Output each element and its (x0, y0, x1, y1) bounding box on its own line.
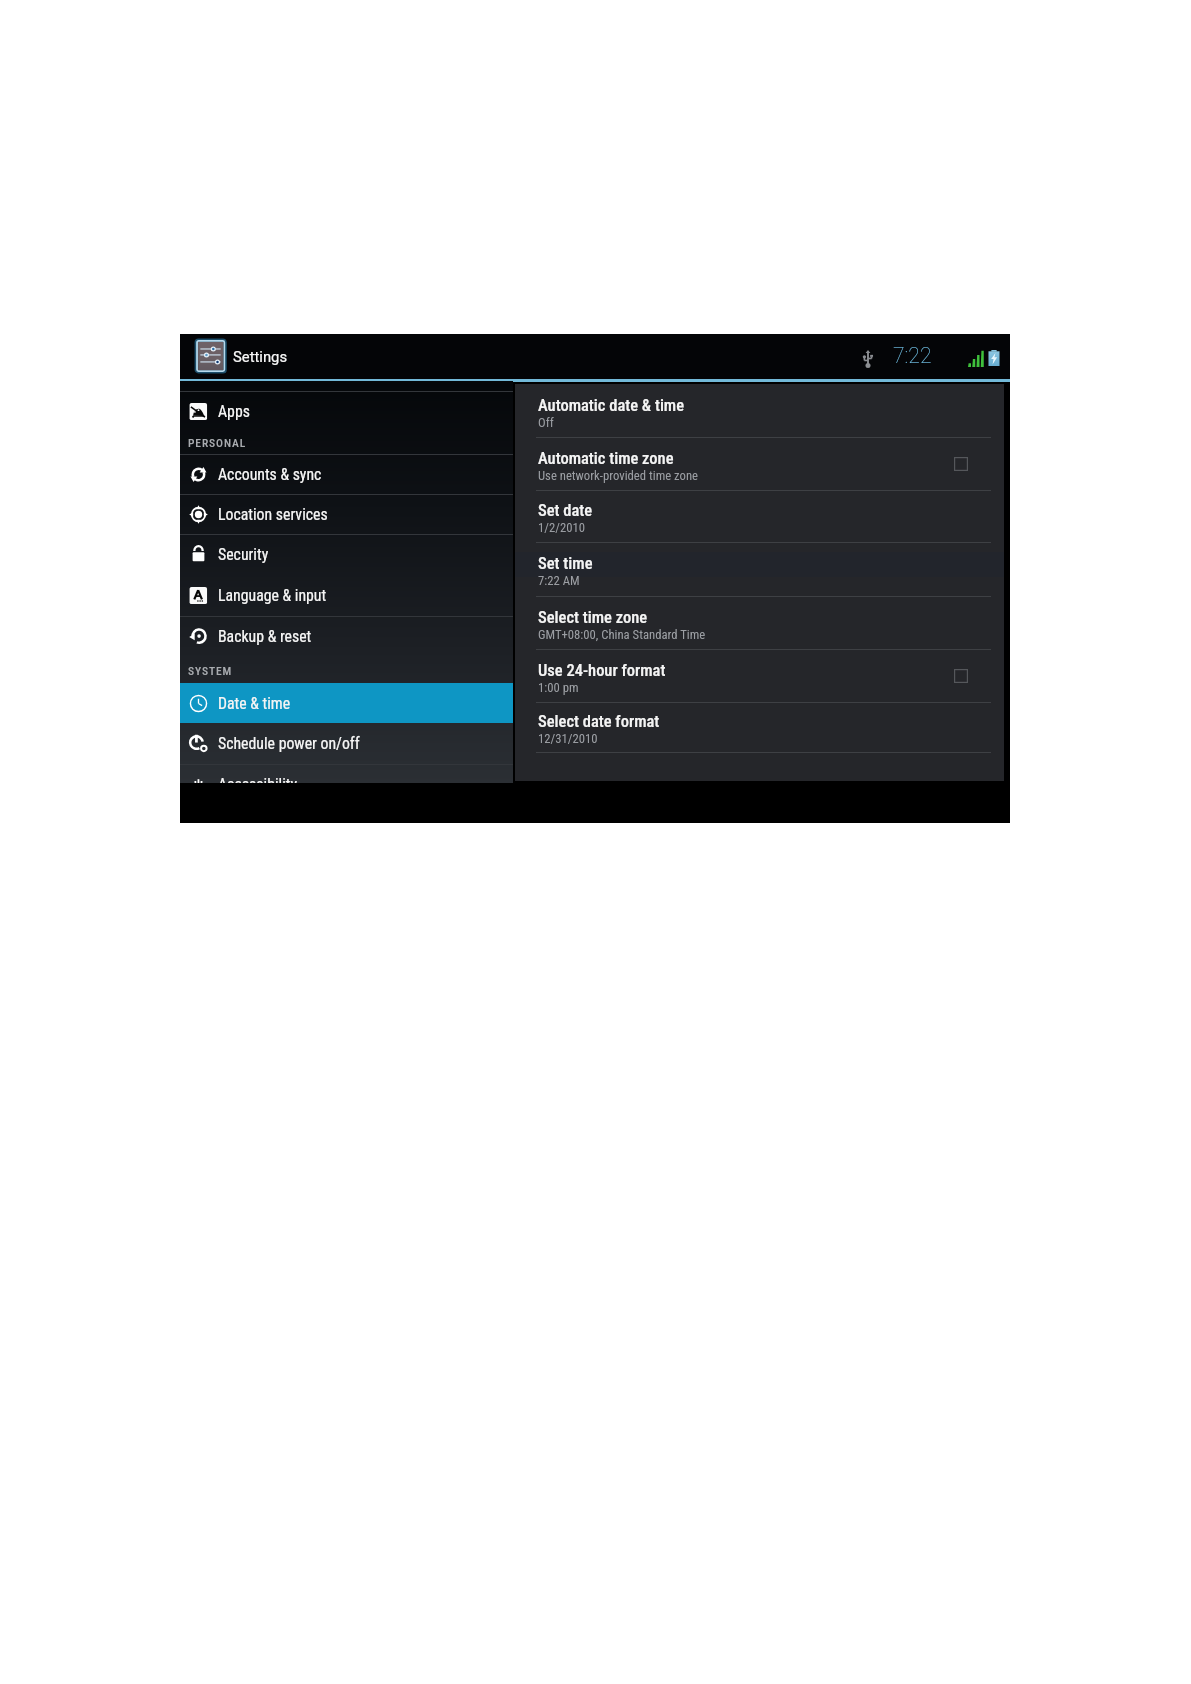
button[interactable]: Set date (515, 490, 1004, 542)
staticText: 7:22 (893, 343, 932, 368)
button[interactable]: Select time zone (515, 596, 1004, 650)
staticText: 1/2/2010 (538, 520, 585, 535)
button[interactable]: Apps (180, 391, 513, 432)
button[interactable]: Automatic time zone (946, 449, 976, 479)
staticText: Select time zone (538, 608, 648, 627)
button[interactable]: Automatic date & time (515, 384, 1004, 437)
staticText: Set time (538, 554, 593, 573)
staticText: Automatic date & time (538, 396, 685, 415)
staticText: 7:22 AM (538, 573, 580, 588)
staticText: GMT+08:00, China Standard Time (538, 627, 706, 642)
button[interactable]: Use 24-hour format (946, 661, 976, 691)
button[interactable]: Accounts & sync (180, 454, 513, 495)
button[interactable]: Date & time (180, 683, 513, 723)
staticText: Schedule power on/off (218, 734, 360, 753)
staticText: Off (538, 415, 554, 430)
button[interactable]: Use 24-hour format (515, 649, 1004, 702)
button[interactable]: Automatic time zone (515, 437, 1004, 491)
staticText: Accessibility (218, 775, 298, 783)
staticText: Date & time (218, 694, 291, 713)
other: USB connected (862, 350, 874, 368)
staticText: Use network-provided time zone (538, 468, 699, 483)
button[interactable]: Security (180, 534, 513, 575)
staticText: Language & input (218, 586, 327, 605)
button[interactable]: Backup & reset (180, 616, 513, 656)
staticText: Location services (218, 505, 328, 524)
button[interactable]: Language & input (180, 575, 513, 616)
button[interactable]: Accessibility (180, 764, 513, 783)
staticText: Backup & reset (218, 627, 312, 646)
button[interactable]: Location services (180, 494, 513, 534)
staticText: Accounts & sync (218, 465, 322, 484)
staticText: Apps (218, 402, 250, 421)
other: Settings (193, 339, 228, 374)
button[interactable]: Select date format (515, 702, 1004, 752)
other: Battery charging (988, 350, 1000, 366)
button[interactable]: Schedule power on/off (180, 723, 513, 764)
staticText: Settings (233, 348, 288, 365)
staticText: Security (218, 545, 269, 564)
staticText: 1:00 pm (538, 680, 579, 695)
button[interactable]: Settings (193, 334, 288, 379)
staticText: PERSONAL (188, 436, 247, 449)
staticText: Automatic time zone (538, 449, 674, 468)
staticText: Set date (538, 501, 593, 520)
button[interactable]: Set time (515, 542, 1004, 596)
staticText: SYSTEM (188, 664, 233, 677)
staticText: Use 24-hour format (538, 661, 666, 680)
staticText: Select date format (538, 712, 660, 731)
other: Signal strength (968, 350, 985, 367)
staticText: 12/31/2010 (538, 731, 598, 746)
